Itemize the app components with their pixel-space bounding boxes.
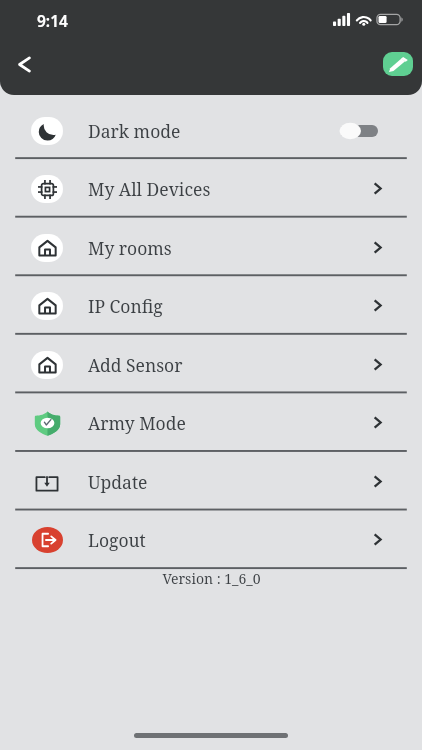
staticText: Army Mode bbox=[88, 411, 186, 435]
button[interactable]: Dark mode bbox=[0, 101, 422, 160]
button[interactable]: IP Config bbox=[0, 276, 422, 335]
staticText: My All Devices bbox=[88, 177, 211, 201]
staticText: Add Sensor bbox=[88, 353, 183, 377]
staticText: My rooms bbox=[88, 236, 172, 260]
staticText: Dark mode bbox=[88, 119, 181, 143]
staticText: IP Config bbox=[88, 294, 163, 318]
button[interactable]: My rooms bbox=[0, 218, 422, 277]
staticText: 9:14 bbox=[37, 10, 68, 31]
button[interactable]: Back bbox=[4, 44, 44, 84]
button[interactable]: Logout bbox=[0, 510, 422, 569]
button[interactable]: My All Devices bbox=[0, 159, 422, 218]
button[interactable]: Army Mode bbox=[0, 393, 422, 452]
staticText: Update bbox=[88, 470, 148, 494]
button[interactable]: Dark mode toggle bbox=[340, 120, 378, 142]
staticText: Logout bbox=[88, 528, 146, 552]
button[interactable]: Add Sensor bbox=[0, 335, 422, 394]
staticText: Version : 1_6_0 bbox=[162, 569, 261, 588]
button[interactable]: Update bbox=[0, 452, 422, 511]
button[interactable]: Edit bbox=[383, 52, 413, 76]
